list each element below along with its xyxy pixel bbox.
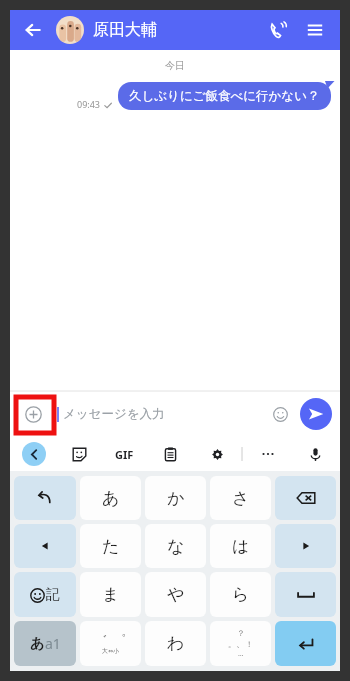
staticText: 、	[236, 638, 245, 649]
button[interactable]: は	[210, 524, 271, 568]
button[interactable]: た	[80, 524, 141, 568]
staticText: 記	[46, 586, 60, 604]
button[interactable]: か	[145, 476, 206, 520]
button[interactable]: わ	[145, 621, 206, 666]
button[interactable]: Undo	[14, 476, 76, 520]
button[interactable]: Emoji	[266, 400, 294, 428]
staticText: は	[232, 536, 250, 557]
button[interactable]: Punctuation	[210, 621, 271, 666]
staticText: メッセージを入力	[63, 406, 266, 422]
staticText: あ	[30, 635, 45, 653]
staticText: 大⇔小	[102, 647, 120, 655]
button[interactable]: Menu	[300, 15, 330, 45]
button[interactable]: Dakuten	[80, 621, 141, 666]
staticText: ！	[245, 639, 253, 649]
staticText: 09:43	[77, 98, 101, 110]
button[interactable]: Collapse	[22, 442, 46, 466]
button[interactable]: Settings	[204, 441, 230, 467]
button[interactable]: Input mode	[14, 621, 76, 666]
staticText: 久しぶりにご飯食べに行かない？	[129, 88, 320, 104]
staticText: あ	[102, 488, 120, 509]
button[interactable]: さ	[210, 476, 271, 520]
button[interactable]: Cursor left	[14, 524, 76, 568]
button[interactable]: Emoji and symbols	[14, 572, 76, 617]
button[interactable]: Back	[20, 17, 46, 43]
staticText: な	[167, 536, 185, 557]
button[interactable]: な	[145, 524, 206, 568]
button[interactable]: Call	[262, 15, 292, 45]
button[interactable]: More options	[255, 441, 281, 467]
button[interactable]: Send	[300, 398, 332, 430]
staticText: ゛	[95, 632, 108, 647]
staticText: た	[102, 536, 120, 557]
staticText: か	[167, 488, 185, 509]
staticText: …	[238, 649, 244, 659]
staticText: 今日	[10, 59, 340, 72]
button[interactable]: Add attachment	[18, 399, 48, 429]
button[interactable]: Cursor right	[275, 524, 336, 568]
staticText: ？	[237, 628, 245, 638]
staticText: ま	[102, 584, 120, 605]
staticText: 原田大輔	[93, 20, 157, 40]
staticText: 。	[228, 639, 236, 649]
button[interactable]: Space	[275, 572, 336, 617]
button[interactable]: ま	[80, 572, 141, 617]
button[interactable]: Stickers	[66, 441, 92, 467]
button[interactable]: や	[145, 572, 206, 617]
staticText: ゜	[114, 632, 127, 647]
staticText: や	[167, 584, 185, 605]
button[interactable]: ら	[210, 572, 271, 617]
button[interactable]: 久しぶりにご飯食べに行かない？	[118, 82, 331, 110]
button[interactable]: Clipboard	[157, 441, 183, 467]
staticText: さ	[232, 488, 250, 509]
staticText: a1	[45, 634, 61, 653]
staticText: ら	[232, 584, 250, 605]
button[interactable]: Enter	[275, 621, 336, 666]
staticText: わ	[167, 633, 185, 654]
staticText: GIF	[115, 447, 134, 462]
button[interactable]: Voice input	[302, 441, 328, 467]
button[interactable]: Backspace	[275, 476, 336, 520]
button[interactable]: あ	[80, 476, 141, 520]
button[interactable]: GIF	[113, 445, 136, 464]
